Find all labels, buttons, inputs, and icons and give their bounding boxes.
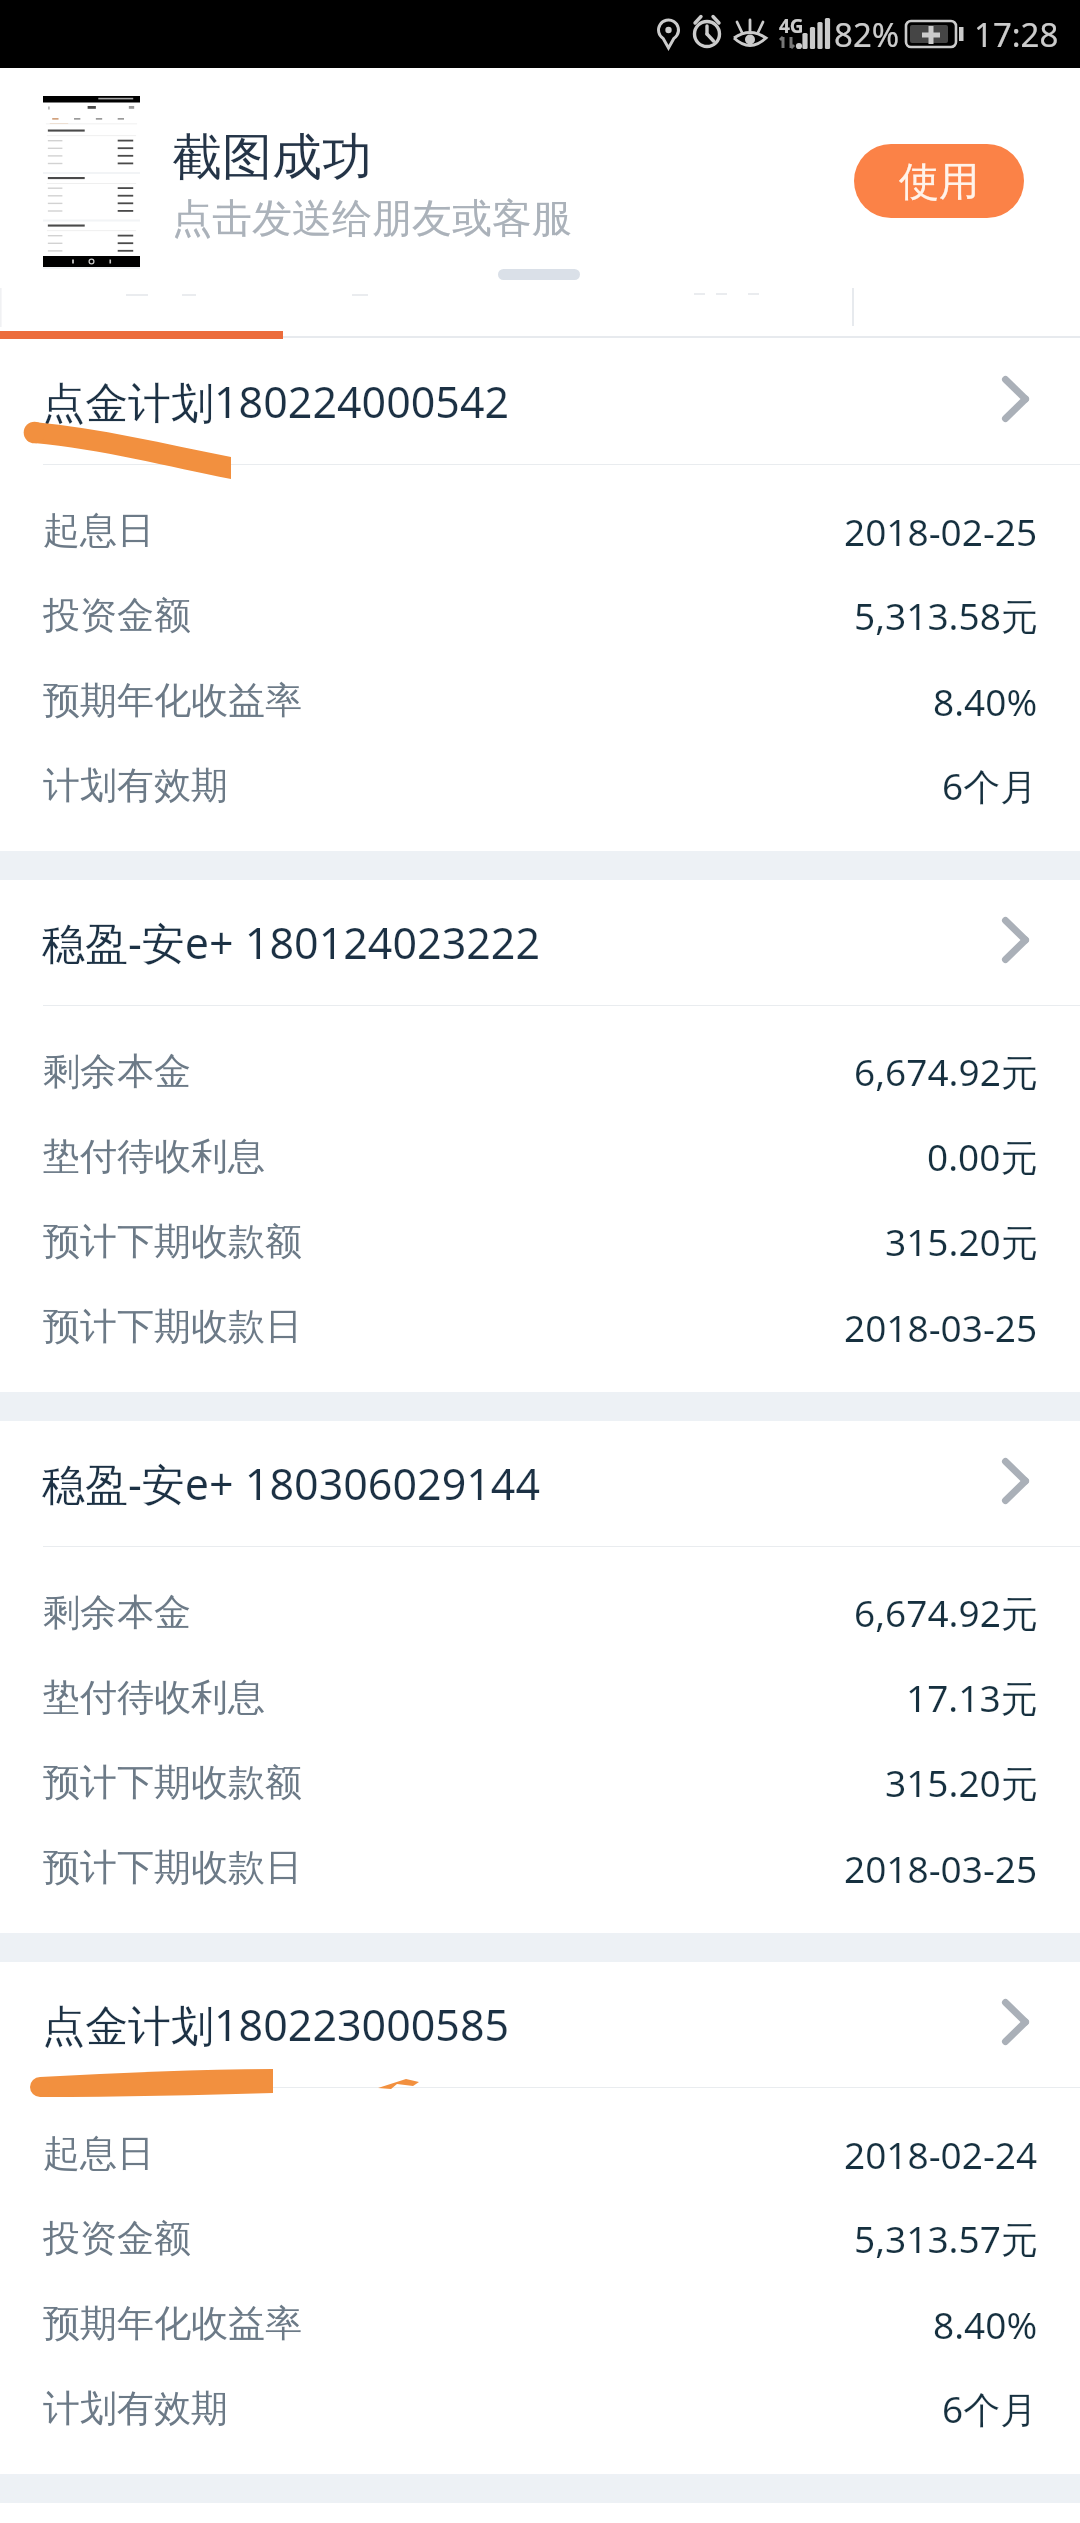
staticText: 2018-03-25: [844, 1302, 1038, 1352]
staticText: 计划有效期: [43, 2385, 228, 2432]
staticText: 起息日: [43, 2130, 154, 2177]
staticText: 使用: [899, 156, 979, 206]
staticText: 8.40%: [933, 2299, 1038, 2349]
staticText: 预计下期收款额: [43, 1218, 302, 1265]
staticText: 0.00元: [927, 1131, 1038, 1182]
staticText: 8.40%: [933, 676, 1038, 726]
staticText: 6个月: [942, 760, 1038, 811]
staticText: 4G: [779, 13, 804, 39]
button[interactable]: 稳盈-安e+ 180306029144: [0, 1421, 1080, 1546]
staticText: 5,313.58元: [854, 590, 1038, 641]
staticText: 点金计划180223000585: [42, 1995, 510, 2054]
button[interactable]: [0, 285, 270, 333]
staticText: 点击发送给朋友或客服: [172, 193, 572, 243]
staticText: 计划有效期: [43, 762, 228, 809]
staticText: 315.20元: [885, 1216, 1038, 1267]
staticText: 82%: [834, 12, 900, 57]
other: 查看详情: [1002, 917, 1029, 963]
button[interactable]: 点金计划180224000542: [0, 339, 1080, 464]
other: 查看详情: [1002, 1458, 1029, 1504]
staticText: 稳盈-安e+ 180306029144: [42, 1454, 541, 1513]
staticText: 稳盈-安e+ 180124023222: [42, 913, 541, 972]
staticText: 6,674.92元: [854, 1046, 1038, 1097]
staticText: 预计下期收款日: [43, 1844, 302, 1891]
staticText: 5,313.57元: [854, 2213, 1038, 2264]
staticText: 6,674.92元: [854, 1587, 1038, 1638]
staticText: 6个月: [942, 2383, 1038, 2434]
other: 查看详情: [1002, 376, 1029, 422]
staticText: 2018-02-25: [844, 506, 1038, 556]
staticText: 投资金额: [43, 2215, 191, 2262]
staticText: 预期年化收益率: [43, 677, 302, 724]
staticText: 截图成功: [172, 126, 372, 189]
button[interactable]: 点金计划180223000585: [0, 1962, 1080, 2087]
staticText: 剩余本金: [43, 1048, 191, 1095]
button[interactable]: 稳盈-安e+ 180124023222: [0, 880, 1080, 1005]
staticText: 预计下期收款日: [43, 1303, 302, 1350]
staticText: 315.20元: [885, 1757, 1038, 1808]
staticText: 预计下期收款额: [43, 1759, 302, 1806]
staticText: 17:28: [974, 12, 1059, 57]
other: 查看详情: [1002, 1999, 1029, 2045]
staticText: 预期年化收益率: [43, 2300, 302, 2347]
staticText: 17.13元: [906, 1672, 1038, 1723]
staticText: 垫付待收利息: [43, 1133, 265, 1180]
staticText: 2018-02-24: [844, 2129, 1038, 2179]
staticText: 起息日: [43, 507, 154, 554]
button[interactable]: 使用: [854, 144, 1024, 218]
staticText: 点金计划180224000542: [42, 372, 510, 431]
staticText: 剩余本金: [43, 1589, 191, 1636]
staticText: 投资金额: [43, 592, 191, 639]
staticText: 2018-03-25: [844, 1843, 1038, 1893]
staticText: 垫付待收利息: [43, 1674, 265, 1721]
button[interactable]: [270, 285, 540, 333]
